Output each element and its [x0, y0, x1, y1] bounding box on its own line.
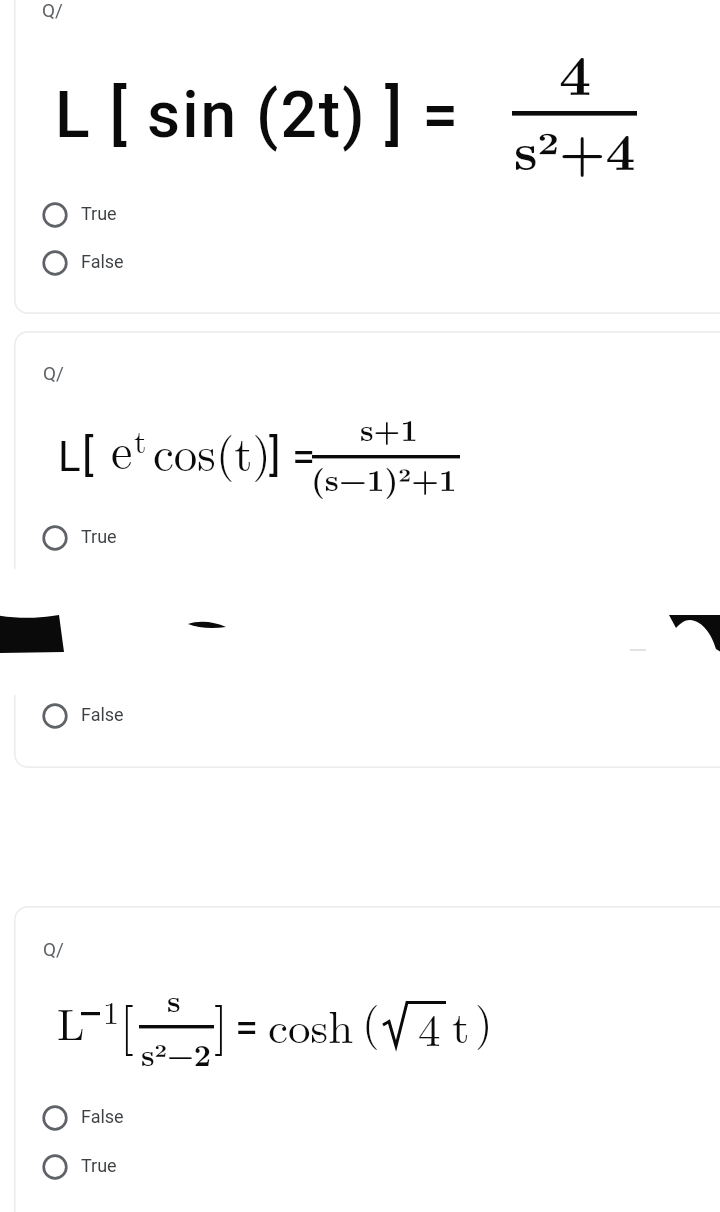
- staticText: cos(t): [153, 417, 271, 484]
- staticText: s²−2: [141, 1032, 212, 1075]
- staticText: Q/: [43, 362, 64, 384]
- staticText: True: [81, 203, 117, 224]
- staticText: Q/: [43, 938, 64, 960]
- staticText: ): [475, 988, 493, 1052]
- staticText: L [ sin (2t) ] =: [55, 78, 460, 153]
- staticText: 4: [559, 32, 592, 112]
- staticText: e: [111, 414, 133, 482]
- staticText: L: [58, 432, 81, 481]
- button[interactable]: True: [14, 1147, 720, 1187]
- button[interactable]: False: [14, 696, 720, 736]
- staticText: [: [120, 987, 134, 1058]
- staticText: True: [81, 1155, 117, 1176]
- staticText: 1: [103, 988, 120, 1033]
- staticText: (s−1)²+1: [311, 456, 457, 500]
- staticText: False: [81, 251, 124, 272]
- staticText: s²+4: [514, 111, 636, 185]
- button[interactable]: True: [14, 195, 720, 235]
- staticText: s: [167, 978, 181, 1021]
- staticText: t: [452, 992, 470, 1056]
- staticText: s+1: [360, 407, 418, 450]
- staticText: L: [57, 990, 85, 1052]
- staticText: False: [81, 704, 124, 725]
- button[interactable]: Q/: [14, 0, 720, 314]
- button[interactable]: False: [14, 1098, 720, 1138]
- staticText: False: [81, 1106, 124, 1127]
- staticText: Q/: [42, 0, 63, 21]
- staticText: t: [134, 417, 147, 462]
- staticText: cosh: [268, 992, 354, 1056]
- staticText: =: [235, 1003, 259, 1052]
- staticText: [: [82, 429, 94, 481]
- button[interactable]: True: [14, 518, 720, 558]
- staticText: ]: [269, 429, 281, 481]
- button[interactable]: False: [14, 243, 720, 283]
- staticText: ]: [214, 987, 228, 1058]
- staticText: True: [81, 526, 117, 547]
- staticText: 4: [418, 995, 441, 1059]
- button[interactable]: Q/: [14, 906, 720, 1212]
- button[interactable]: Q/: [14, 331, 720, 768]
- staticText: (: [362, 988, 380, 1052]
- staticText: =: [292, 432, 316, 481]
